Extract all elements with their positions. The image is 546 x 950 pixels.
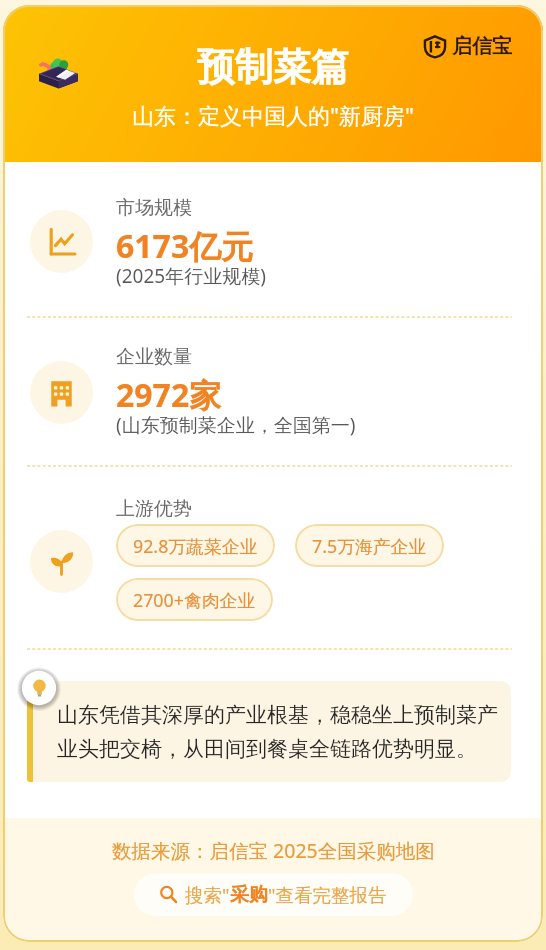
staticText: 上游优势	[116, 497, 192, 521]
other: 预制菜	[39, 57, 78, 87]
staticText: 数据来源：启信宝 2025全国采购地图	[112, 837, 435, 864]
staticText: 6173亿元	[116, 224, 254, 268]
button[interactable]: 搜索"	[134, 873, 413, 916]
staticText: (山东预制菜企业，全国第一)	[116, 412, 356, 438]
staticText: 7.5万海产企业	[312, 534, 427, 558]
staticText: 启信宝	[452, 34, 512, 59]
staticText: 采购	[230, 883, 268, 907]
button[interactable]: 2700+禽肉企业	[116, 578, 273, 621]
staticText: "查看完整报告	[268, 882, 387, 907]
staticText: 山东：定义中国人的"新厨房"	[132, 100, 414, 130]
staticText: 预制菜篇	[197, 43, 349, 91]
button[interactable]: 启信宝 logo	[423, 34, 512, 59]
staticText: 2700+禽肉企业	[133, 588, 256, 612]
staticText: (2025年行业规模)	[116, 263, 266, 289]
staticText: 92.8万蔬菜企业	[133, 534, 258, 558]
staticText: 2972家	[116, 373, 222, 417]
button[interactable]: 市场规模	[3, 172, 543, 316]
staticText: 山东凭借其深厚的产业根基，稳稳坐上预制菜产业头把交椅，从田间到餐桌全链路优势明显…	[57, 702, 507, 762]
staticText: 市场规模	[116, 196, 192, 220]
button[interactable]: 92.8万蔬菜企业	[116, 524, 275, 567]
staticText: 搜索"	[185, 882, 230, 907]
button[interactable]: 7.5万海产企业	[295, 524, 444, 567]
staticText: 企业数量	[116, 345, 192, 369]
button[interactable]: 企业数量	[3, 321, 543, 465]
